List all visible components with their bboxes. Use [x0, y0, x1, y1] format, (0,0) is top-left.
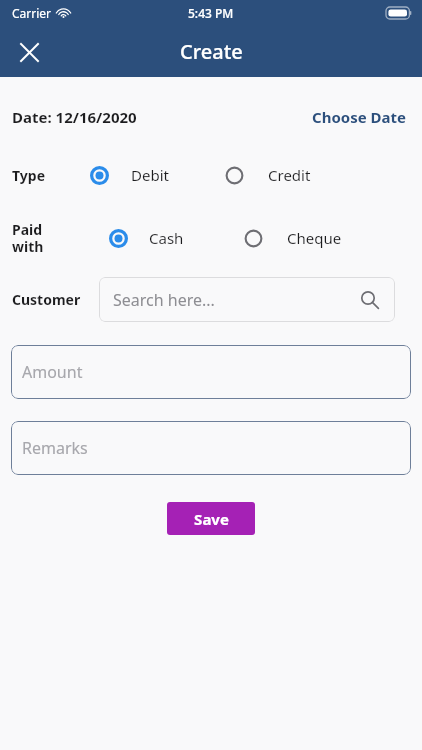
- button[interactable]: Cash: [109, 225, 184, 251]
- staticText: Carrier: [12, 5, 52, 21]
- staticText: Cheque: [287, 228, 342, 248]
- staticText: Save: [194, 509, 229, 529]
- button[interactable]: Close: [10, 33, 48, 71]
- staticText: Remarks: [22, 437, 88, 459]
- staticText: Debit: [131, 165, 169, 185]
- button[interactable]: Remarks: [11, 421, 411, 475]
- staticText: Paid with: [12, 220, 44, 256]
- staticText: 5:43 PM: [188, 5, 234, 21]
- button[interactable]: Debit: [90, 162, 169, 188]
- staticText: Type: [12, 166, 45, 185]
- button[interactable]: Search here...: [99, 277, 395, 322]
- button[interactable]: Choose Date: [308, 103, 410, 131]
- staticText: Create: [180, 38, 243, 65]
- button[interactable]: Credit: [225, 162, 311, 188]
- staticText: Credit: [268, 165, 311, 185]
- staticText: Date: 12/16/2020: [12, 107, 137, 127]
- other: Search: [359, 289, 381, 311]
- staticText: Amount: [22, 361, 83, 383]
- button[interactable]: Save: [167, 502, 255, 535]
- button[interactable]: Amount: [11, 345, 411, 399]
- staticText: Search here...: [113, 289, 215, 311]
- staticText: Cash: [149, 228, 184, 248]
- staticText: Customer: [12, 290, 81, 309]
- staticText: Choose Date: [312, 107, 406, 127]
- button[interactable]: Cheque: [244, 225, 342, 251]
